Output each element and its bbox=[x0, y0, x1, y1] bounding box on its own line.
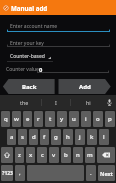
staticText: h bbox=[66, 133, 70, 141]
button[interactable]: k bbox=[87, 129, 97, 145]
button[interactable] bbox=[7, 34, 110, 47]
button[interactable]: e bbox=[23, 111, 32, 127]
staticText: r bbox=[37, 115, 40, 123]
button[interactable]: q bbox=[1, 111, 10, 127]
button[interactable]: c bbox=[37, 147, 47, 163]
staticText: i bbox=[85, 115, 87, 123]
staticText: a bbox=[10, 133, 14, 141]
staticText: Back bbox=[22, 83, 37, 91]
button[interactable]: Back bbox=[3, 79, 55, 94]
staticText: 0 bbox=[39, 66, 43, 74]
button[interactable] bbox=[7, 49, 110, 62]
button[interactable]: f bbox=[40, 129, 49, 145]
staticText: e bbox=[26, 115, 30, 123]
staticText: d bbox=[32, 133, 36, 141]
staticText: b bbox=[64, 151, 68, 159]
button[interactable]: . bbox=[86, 165, 96, 181]
staticText: Enter your key bbox=[10, 40, 44, 47]
staticText: Next bbox=[100, 170, 113, 177]
button[interactable]: b bbox=[61, 147, 71, 163]
staticText: n bbox=[76, 151, 80, 159]
staticText: p bbox=[108, 115, 112, 123]
button[interactable]: s bbox=[18, 129, 27, 145]
staticText: l bbox=[103, 133, 105, 141]
staticText: hi bbox=[86, 99, 91, 106]
button[interactable]: m bbox=[85, 147, 95, 163]
button[interactable]: z bbox=[15, 147, 24, 163]
staticText: q bbox=[4, 115, 8, 123]
button[interactable]: v bbox=[49, 147, 59, 163]
staticText: g bbox=[54, 133, 58, 141]
button[interactable] bbox=[7, 19, 110, 32]
button[interactable]: j bbox=[75, 129, 85, 145]
button[interactable]: Manual add bbox=[0, 0, 116, 15]
button[interactable]: d bbox=[29, 129, 38, 145]
staticText: t bbox=[49, 115, 52, 123]
button[interactable]: w bbox=[12, 111, 21, 127]
staticText: ?123 bbox=[2, 170, 13, 177]
button[interactable]: h bbox=[63, 129, 73, 145]
button[interactable]: a bbox=[7, 129, 16, 145]
button[interactable]: l bbox=[99, 129, 109, 145]
button[interactable]: t bbox=[45, 111, 55, 127]
staticText: Counter value bbox=[6, 66, 39, 73]
button[interactable]: the bbox=[0, 95, 41, 110]
staticText: , bbox=[19, 169, 21, 177]
staticText: s bbox=[21, 133, 24, 141]
button[interactable]: Voice input bbox=[103, 95, 116, 110]
button[interactable]: ?123 bbox=[1, 165, 13, 181]
button[interactable]: Add bbox=[59, 79, 111, 94]
button[interactable]: , bbox=[15, 165, 25, 181]
staticText: the bbox=[20, 99, 29, 106]
button[interactable]: o bbox=[93, 111, 103, 127]
button[interactable] bbox=[2, 64, 112, 73]
button[interactable]: n bbox=[73, 147, 83, 163]
button[interactable]: u bbox=[69, 111, 79, 127]
button[interactable]: p bbox=[105, 111, 115, 127]
staticText: o bbox=[96, 115, 100, 123]
staticText: Add bbox=[79, 83, 91, 91]
staticText: Enter account name bbox=[10, 23, 58, 30]
staticText: y bbox=[60, 115, 64, 123]
staticText: k bbox=[90, 133, 94, 141]
button[interactable]: Delete bbox=[97, 147, 115, 163]
button[interactable]: I bbox=[42, 95, 70, 110]
button[interactable]: hi bbox=[71, 95, 108, 110]
staticText: . bbox=[90, 169, 92, 177]
button[interactable]: r bbox=[34, 111, 43, 127]
staticText: u bbox=[72, 115, 76, 123]
staticText: x bbox=[29, 151, 33, 159]
staticText: Counter-based bbox=[10, 53, 45, 60]
staticText: j bbox=[79, 133, 81, 141]
staticText: w bbox=[14, 115, 19, 123]
button[interactable]: Shift bbox=[1, 147, 13, 163]
staticText: m bbox=[87, 151, 93, 159]
staticText: v bbox=[52, 151, 56, 159]
staticText: z bbox=[18, 151, 21, 159]
staticText: I bbox=[55, 99, 57, 106]
staticText: f bbox=[43, 133, 46, 141]
button[interactable]: g bbox=[51, 129, 61, 145]
staticText: Manual add bbox=[11, 4, 48, 12]
button[interactable]: i bbox=[81, 111, 91, 127]
button[interactable]: y bbox=[57, 111, 67, 127]
staticText: c bbox=[41, 151, 44, 159]
button[interactable]: x bbox=[26, 147, 35, 163]
button[interactable]: Next bbox=[98, 165, 115, 181]
